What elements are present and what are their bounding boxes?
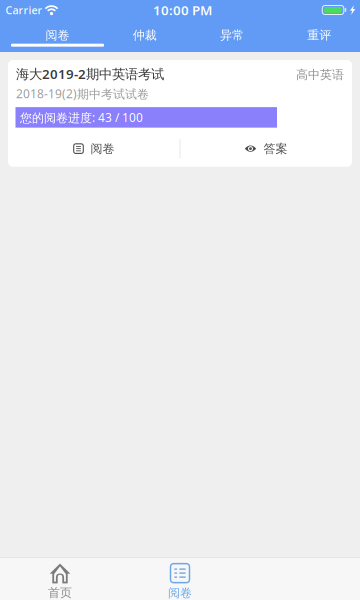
button[interactable]: 阅卷 [120,558,240,600]
staticText: 阅卷 [90,141,114,156]
staticText: 重评 [307,28,331,43]
staticText: 阅卷 [45,28,69,43]
staticText: 您的阅卷进度: 43 / 100 [20,109,143,125]
button[interactable]: 重评 [273,20,360,52]
button[interactable]: 答案 [180,135,352,163]
staticText: 2018-19(2)期中考试试卷 [16,86,149,102]
button[interactable]: 仲裁 [98,20,185,52]
staticText: 仲裁 [133,28,157,43]
button[interactable]: 阅卷 [8,135,180,163]
staticText: 首页 [48,585,72,600]
button[interactable]: 首页 [0,558,120,600]
staticText: 异常 [220,28,244,43]
staticText: Carrier [5,3,42,17]
staticText: 答案 [263,141,287,156]
staticText: 10:00 PM [153,1,212,19]
staticText: 阅卷 [168,586,192,600]
staticText: 高中英语 [296,67,344,82]
button[interactable]: 异常 [185,20,273,52]
staticText: 海大2019-2期中英语考试 [16,65,164,83]
button[interactable]: 阅卷 [11,20,98,52]
